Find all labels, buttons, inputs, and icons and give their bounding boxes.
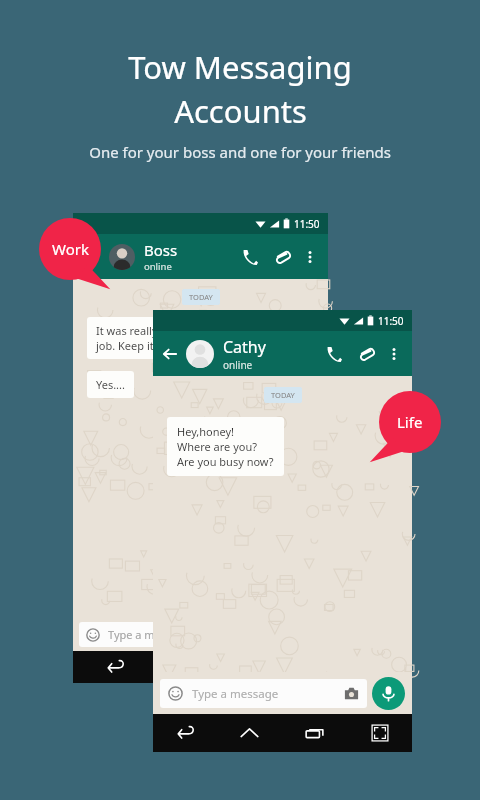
button[interactable]: Attach bbox=[354, 342, 378, 366]
button[interactable]: Screenshot bbox=[347, 714, 412, 752]
staticText: job. Keep it up! bbox=[96, 338, 174, 353]
button[interactable]: Back bbox=[73, 651, 158, 683]
button[interactable]: Voice message bbox=[372, 677, 405, 710]
staticText: It was really a good bbox=[96, 323, 197, 338]
button[interactable]: More options bbox=[384, 344, 404, 364]
staticText: Tow Messaging bbox=[128, 46, 352, 88]
staticText: 11:50 bbox=[294, 217, 320, 231]
staticText: Are you busy now? bbox=[177, 454, 274, 469]
staticText: Work bbox=[52, 239, 89, 259]
button[interactable]: Yes.... bbox=[87, 371, 134, 398]
staticText: Life bbox=[397, 412, 423, 432]
button[interactable]: Home bbox=[158, 651, 243, 683]
button[interactable]: Type a message bbox=[79, 622, 322, 647]
staticText: TODAY bbox=[189, 292, 213, 302]
button[interactable]: More options bbox=[300, 247, 320, 267]
staticText: Accounts bbox=[174, 90, 307, 132]
button[interactable]: Call bbox=[322, 342, 346, 366]
button[interactable]: Back bbox=[153, 714, 217, 752]
staticText: TODAY bbox=[271, 390, 295, 400]
staticText: Cathy bbox=[223, 336, 266, 358]
staticText: online bbox=[144, 260, 172, 273]
button[interactable]: Type a message bbox=[160, 679, 367, 708]
button[interactable]: Back bbox=[153, 331, 412, 376]
button[interactable]: Hey,honey! bbox=[167, 417, 284, 476]
staticText: Yes.... bbox=[96, 377, 125, 392]
button[interactable]: Work bbox=[39, 218, 101, 280]
staticText: One for your boss and one for your frien… bbox=[89, 142, 391, 162]
staticText: Where are you? bbox=[177, 439, 258, 454]
button[interactable]: It was really a good bbox=[87, 317, 206, 359]
button[interactable]: Call bbox=[238, 245, 262, 269]
staticText: Type a message bbox=[108, 627, 191, 642]
staticText: Type a message bbox=[192, 686, 279, 702]
button[interactable]: Back bbox=[159, 343, 181, 365]
button[interactable]: Life bbox=[379, 391, 441, 453]
staticText: online bbox=[223, 358, 253, 372]
staticText: Hey,honey! bbox=[177, 424, 235, 439]
button[interactable]: Recents bbox=[282, 714, 347, 752]
button[interactable]: Home bbox=[217, 714, 282, 752]
staticText: 11:50 bbox=[378, 314, 404, 328]
button[interactable]: Camera bbox=[344, 686, 359, 701]
button[interactable]: Recents bbox=[243, 651, 328, 683]
staticText: Boss bbox=[144, 240, 178, 260]
button[interactable]: Boss bbox=[73, 234, 328, 279]
button[interactable]: Attach bbox=[270, 245, 294, 269]
